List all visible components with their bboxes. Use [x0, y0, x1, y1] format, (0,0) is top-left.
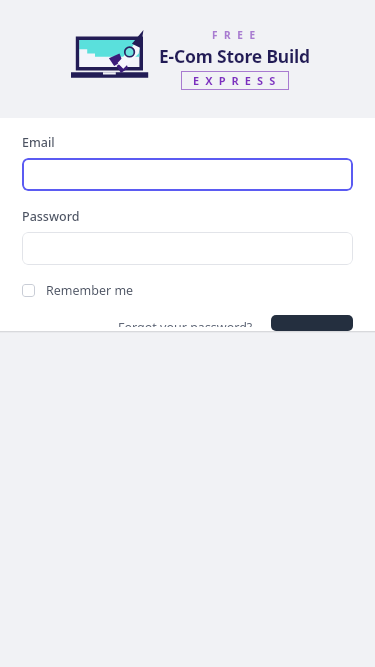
staticText: Password	[22, 208, 80, 225]
button[interactable]: LOG IN	[271, 315, 353, 331]
button[interactable]: Remember me	[22, 282, 134, 299]
staticText: Remember me	[46, 282, 134, 299]
staticText: E-Com Store Build	[159, 44, 310, 68]
staticText: F R E E	[212, 28, 258, 42]
button[interactable]	[22, 158, 353, 191]
staticText: Forgot your password?	[118, 319, 253, 327]
button[interactable]: Forgot your password?	[116, 315, 255, 331]
button[interactable]	[22, 232, 353, 265]
staticText: E X P R E S S	[193, 73, 277, 88]
staticText: Email	[22, 134, 55, 151]
